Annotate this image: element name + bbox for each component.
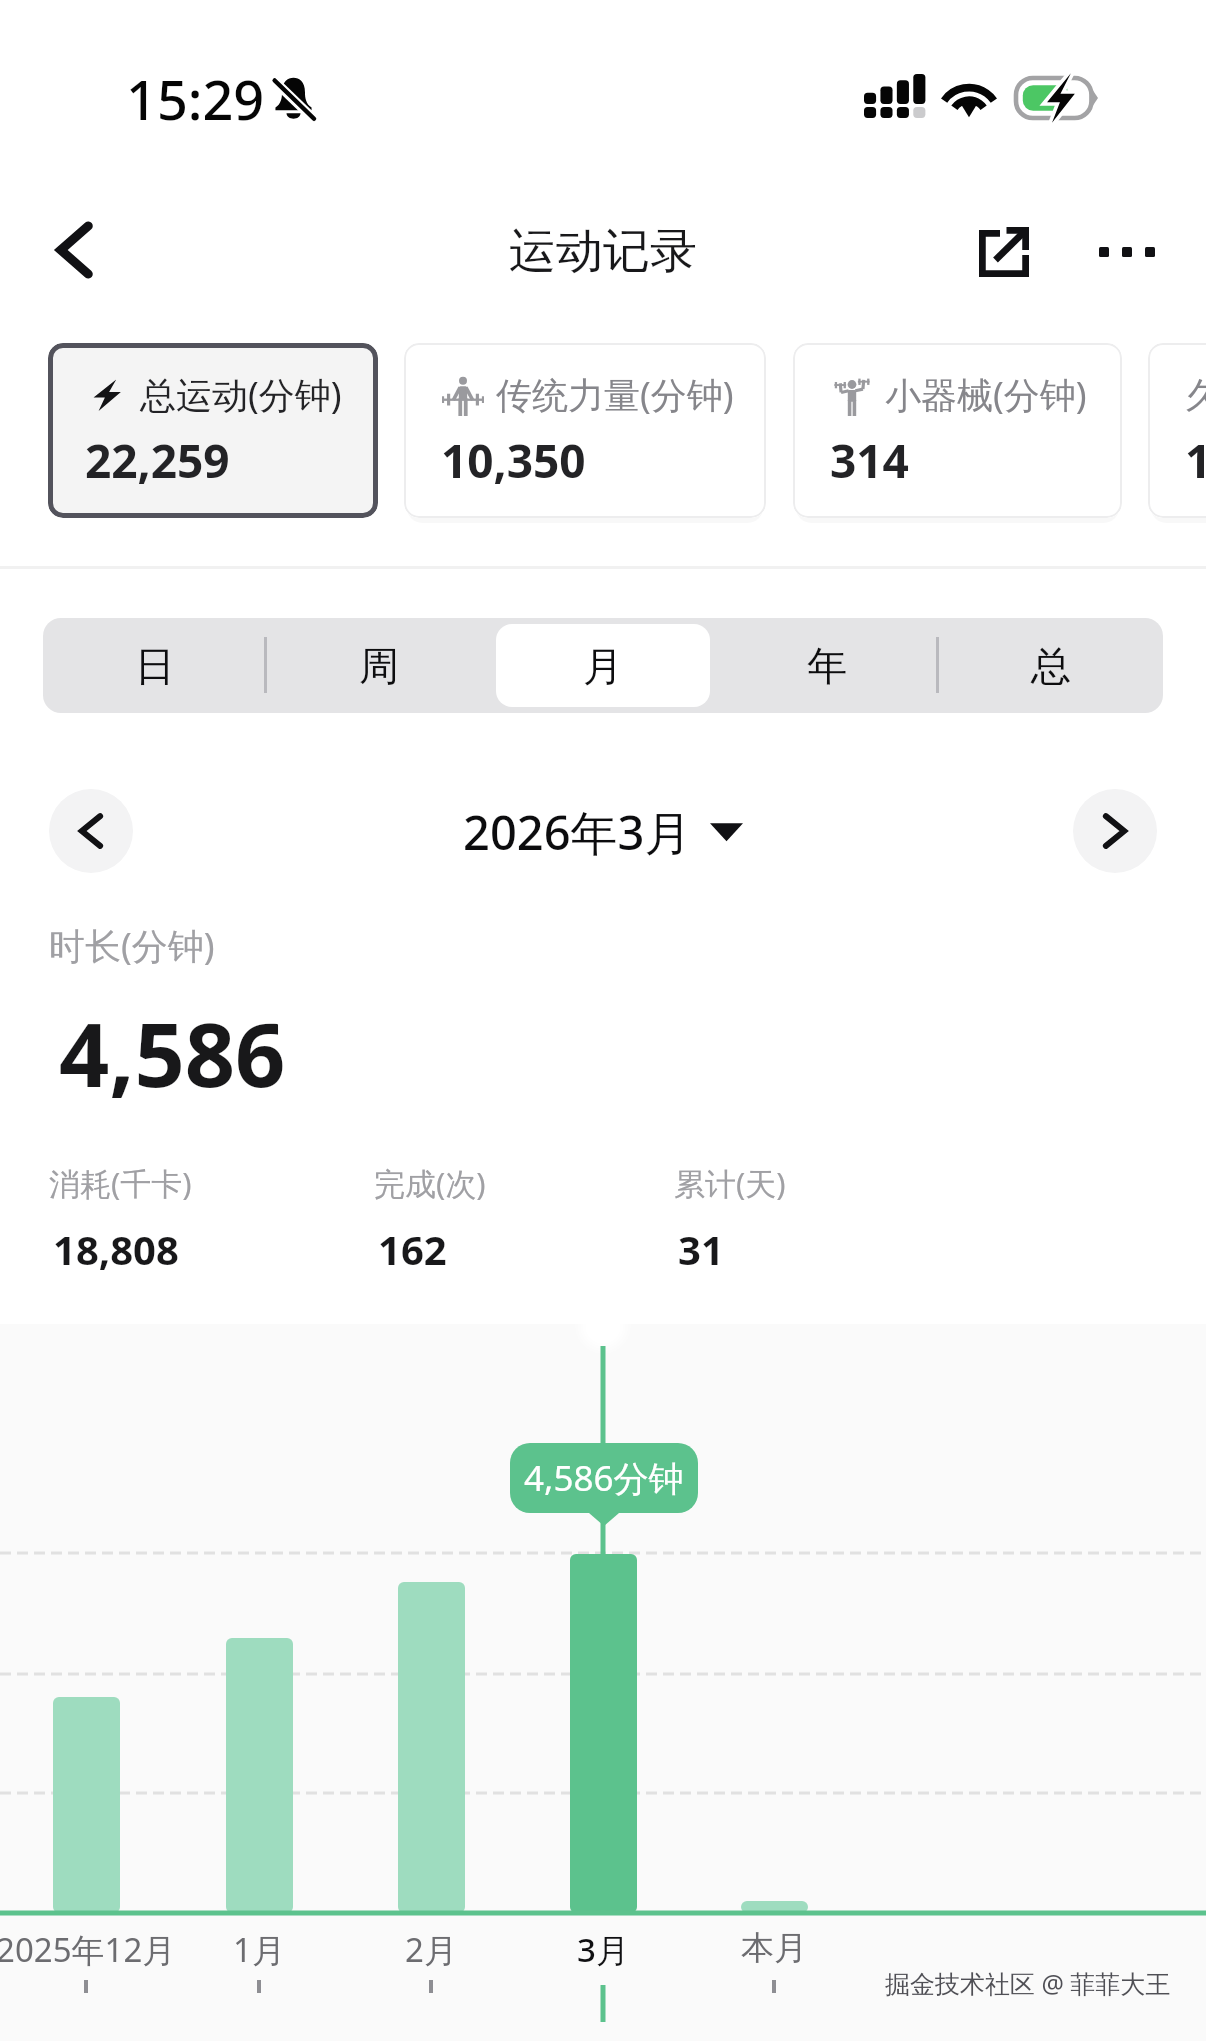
staticText: 15:29 [126,62,265,136]
staticText: 10,350 [441,429,586,492]
staticText: 4,586分钟 [524,1454,684,1502]
staticText: 时长(分钟) [49,921,215,970]
button[interactable]: 2026年3月 [463,800,743,864]
button[interactable]: Next month [1073,789,1157,873]
button[interactable]: 小器械(分钟) [793,343,1122,518]
staticText: 2026年3月 [463,800,692,864]
button[interactable]: 总 [944,624,1158,707]
button[interactable]: Share [954,202,1054,302]
staticText: 总 [1031,641,1071,691]
button[interactable]: Back [34,210,114,290]
staticText: 传统力量(分钟) [496,370,734,419]
staticText: 月 [583,641,623,691]
staticText: 完成(次) [374,1162,486,1204]
button[interactable]: 年 [720,624,934,707]
staticText: 2025年12月 [0,1927,176,1972]
staticText: 日 [135,641,175,691]
staticText: 消耗(千卡) [49,1162,192,1204]
staticText: 年 [807,641,847,691]
button[interactable]: 日 [48,624,262,707]
button[interactable]: 久坐提醒(分钟) [1148,343,1206,518]
staticText: 314 [830,429,909,492]
staticText: 累计(天) [674,1162,786,1204]
button[interactable]: 月 [496,624,710,707]
button[interactable]: 2025年12月 [31,1400,141,1960]
staticText: 掘金技术社区 @ 菲菲大王 [885,1966,1171,2000]
button[interactable]: 总运动(分钟) [48,343,378,518]
staticText: 4,586 [59,993,286,1113]
staticText: 运动记录 [509,222,697,281]
staticText: 162 [378,1222,447,1276]
staticText: 总运动(分钟) [140,370,342,419]
staticText: 本月 [741,1927,807,1969]
button[interactable]: 2月 [376,1400,486,1960]
staticText: 小器械(分钟) [885,370,1087,419]
button[interactable]: 1月 [204,1400,314,1960]
staticText: 周 [359,641,399,691]
button[interactable]: More options [1077,202,1177,302]
staticText: 22,259 [85,429,230,492]
staticText: 2月 [405,1927,457,1972]
staticText: 18,808 [53,1222,179,1276]
button[interactable]: 3月 [548,1400,658,1960]
button[interactable]: 本月 [719,1400,829,1960]
staticText: 13 [1185,429,1206,492]
staticText: 3月 [577,1927,629,1972]
staticText: 31 [678,1222,724,1276]
staticText: 久坐提醒(分钟) [1186,370,1206,419]
button[interactable]: 周 [272,624,486,707]
button[interactable]: Previous month [49,789,133,873]
staticText: 1月 [233,1927,285,1972]
button[interactable]: 传统力量(分钟) [404,343,766,518]
